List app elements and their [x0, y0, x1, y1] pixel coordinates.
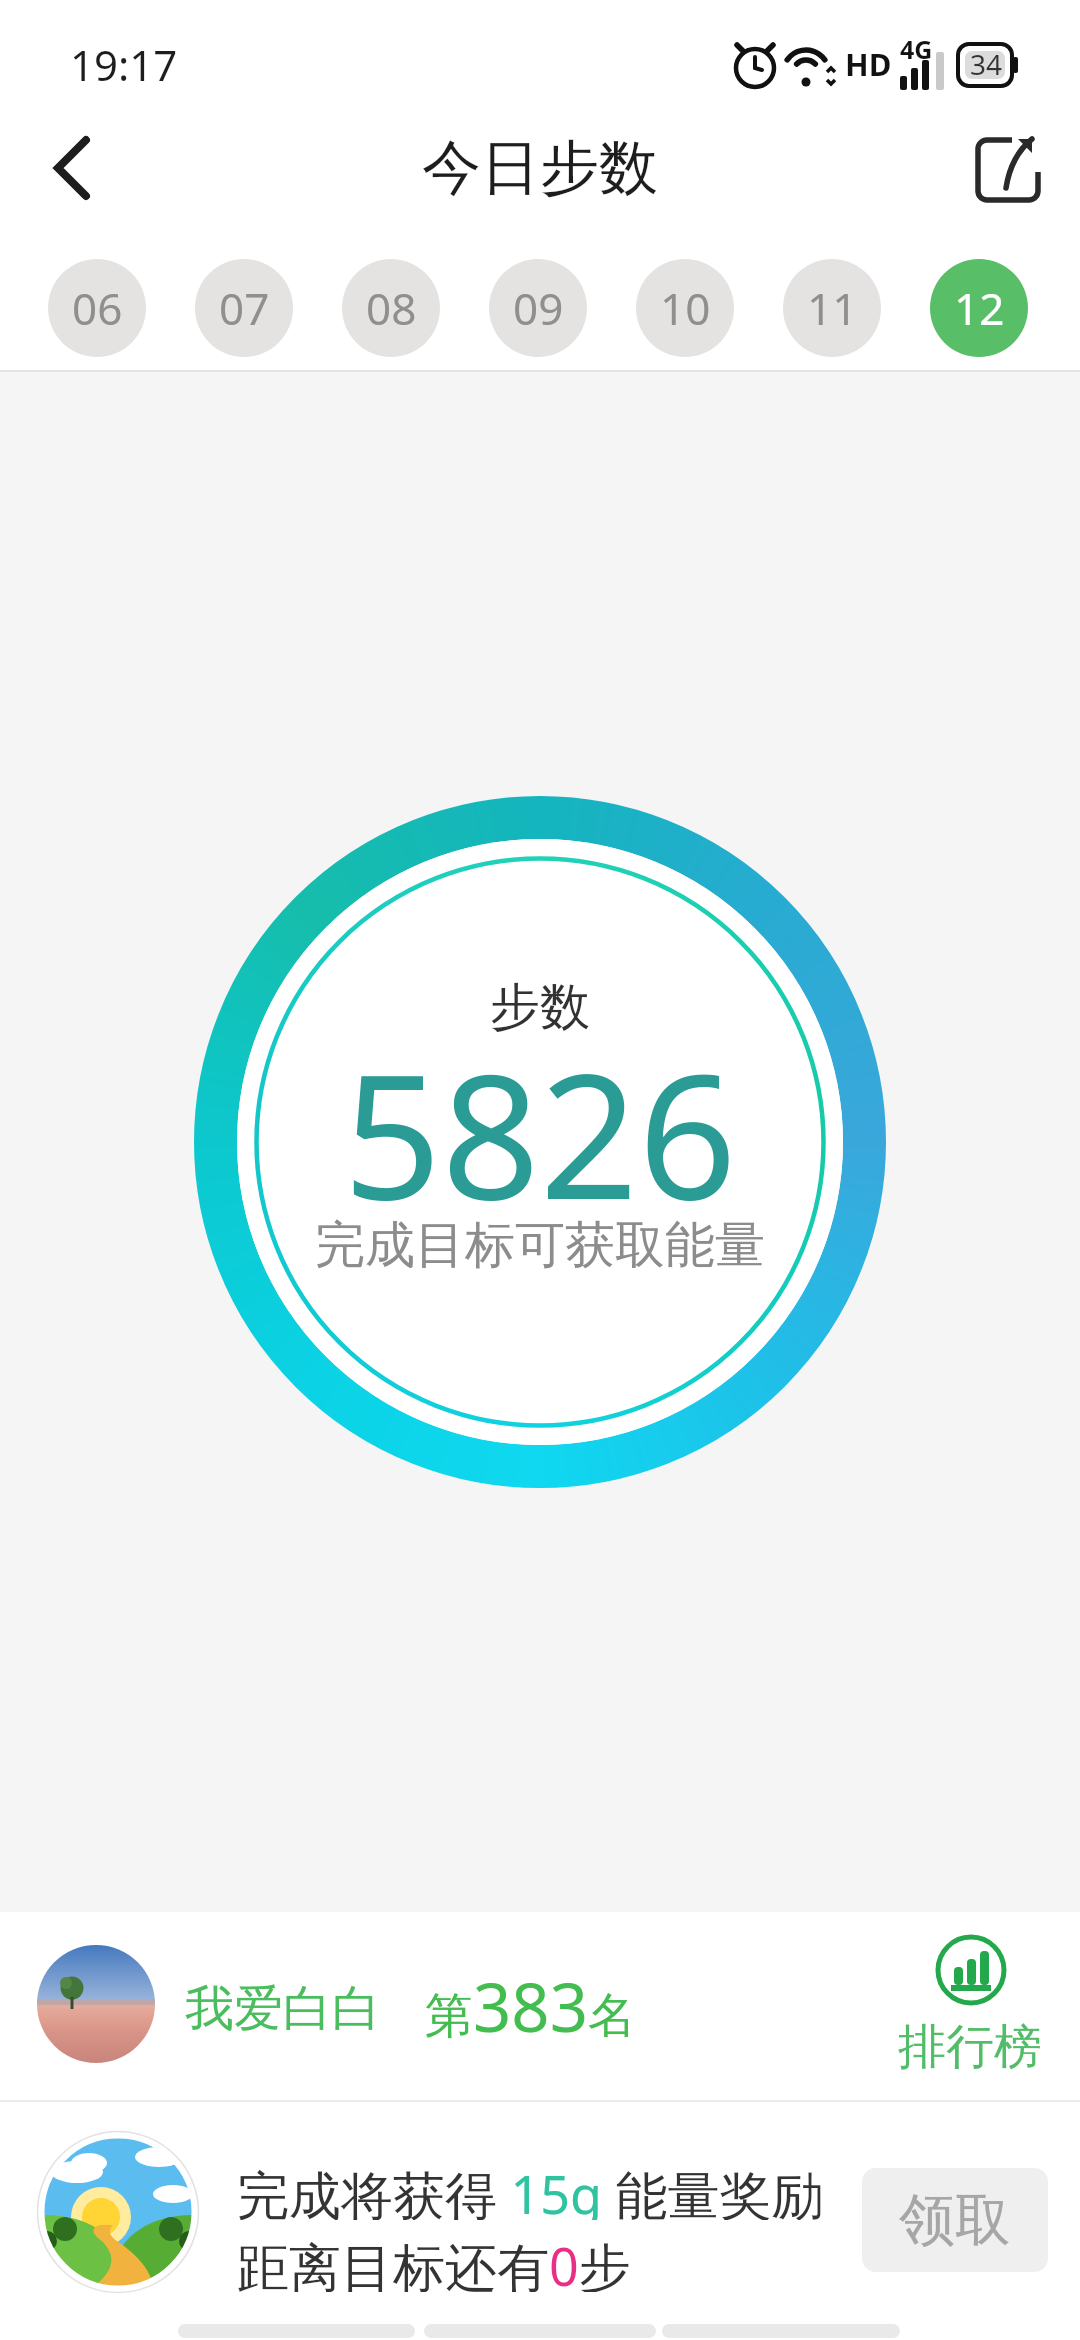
staticText: 排行榜: [898, 2017, 1042, 2077]
button[interactable]: 排行榜: [880, 1925, 1060, 2085]
staticText: 12: [954, 278, 1005, 338]
button[interactable]: 09: [489, 259, 587, 357]
staticText: 完成将获得 15g 能量奖励: [237, 2158, 824, 2220]
button[interactable]: [966, 126, 1050, 210]
button[interactable]: 10: [636, 259, 734, 357]
staticText: 34: [970, 45, 1003, 83]
staticText: HD: [845, 43, 892, 85]
staticText: 08: [366, 278, 417, 338]
staticText: 完成目标可获取能量: [315, 1214, 765, 1277]
staticText: 06: [72, 278, 123, 338]
staticText: 09: [513, 278, 564, 338]
button[interactable]: 07: [195, 259, 293, 357]
staticText: 07: [219, 278, 270, 338]
staticText: 领取: [899, 2185, 1011, 2256]
staticText: 19:17: [70, 36, 178, 92]
button[interactable]: [40, 132, 112, 204]
staticText: 步数: [490, 976, 590, 1039]
staticText: 10: [660, 278, 711, 338]
button[interactable]: 领取: [862, 2168, 1048, 2272]
button[interactable]: 11: [783, 259, 881, 357]
staticText: 距离目标还有0步: [237, 2230, 631, 2292]
button[interactable]: 08: [342, 259, 440, 357]
staticText: 第383名: [425, 1960, 636, 2051]
button[interactable]: 06: [48, 259, 146, 357]
button[interactable]: [0, 2102, 1080, 2340]
button[interactable]: 12: [930, 259, 1028, 357]
staticText: 4G: [900, 32, 933, 64]
button[interactable]: [0, 1912, 1080, 2102]
staticText: 5826: [343, 1015, 737, 1210]
staticText: 11: [807, 278, 858, 338]
staticText: 今日步数: [422, 131, 658, 205]
staticText: 我爱白白: [185, 1978, 381, 2034]
